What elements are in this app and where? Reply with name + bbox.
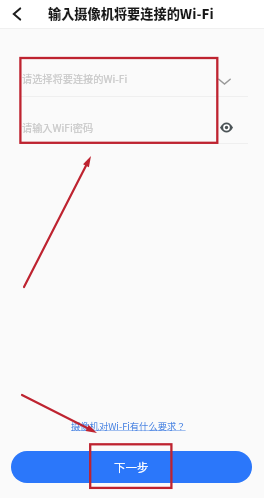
button[interactable]: Choose Wi-Fi xyxy=(218,75,231,88)
button[interactable]: 摄像机对Wi-Fi有什么要求？ xyxy=(71,417,194,434)
staticText: 下一步 xyxy=(114,459,149,476)
staticText: 输入摄像机将要连接的Wi-Fi xyxy=(48,4,214,23)
staticText: 请输入WiFi密码 xyxy=(22,120,94,135)
button[interactable]: Show password xyxy=(220,122,233,133)
button[interactable]: 请选择将要连接的Wi-Fi xyxy=(0,59,264,97)
button[interactable]: 请输入WiFi密码 xyxy=(0,104,264,150)
staticText: 请选择将要连接的Wi-Fi xyxy=(22,71,128,86)
button[interactable]: 下一步 xyxy=(11,451,252,483)
button[interactable]: Back xyxy=(6,3,28,25)
